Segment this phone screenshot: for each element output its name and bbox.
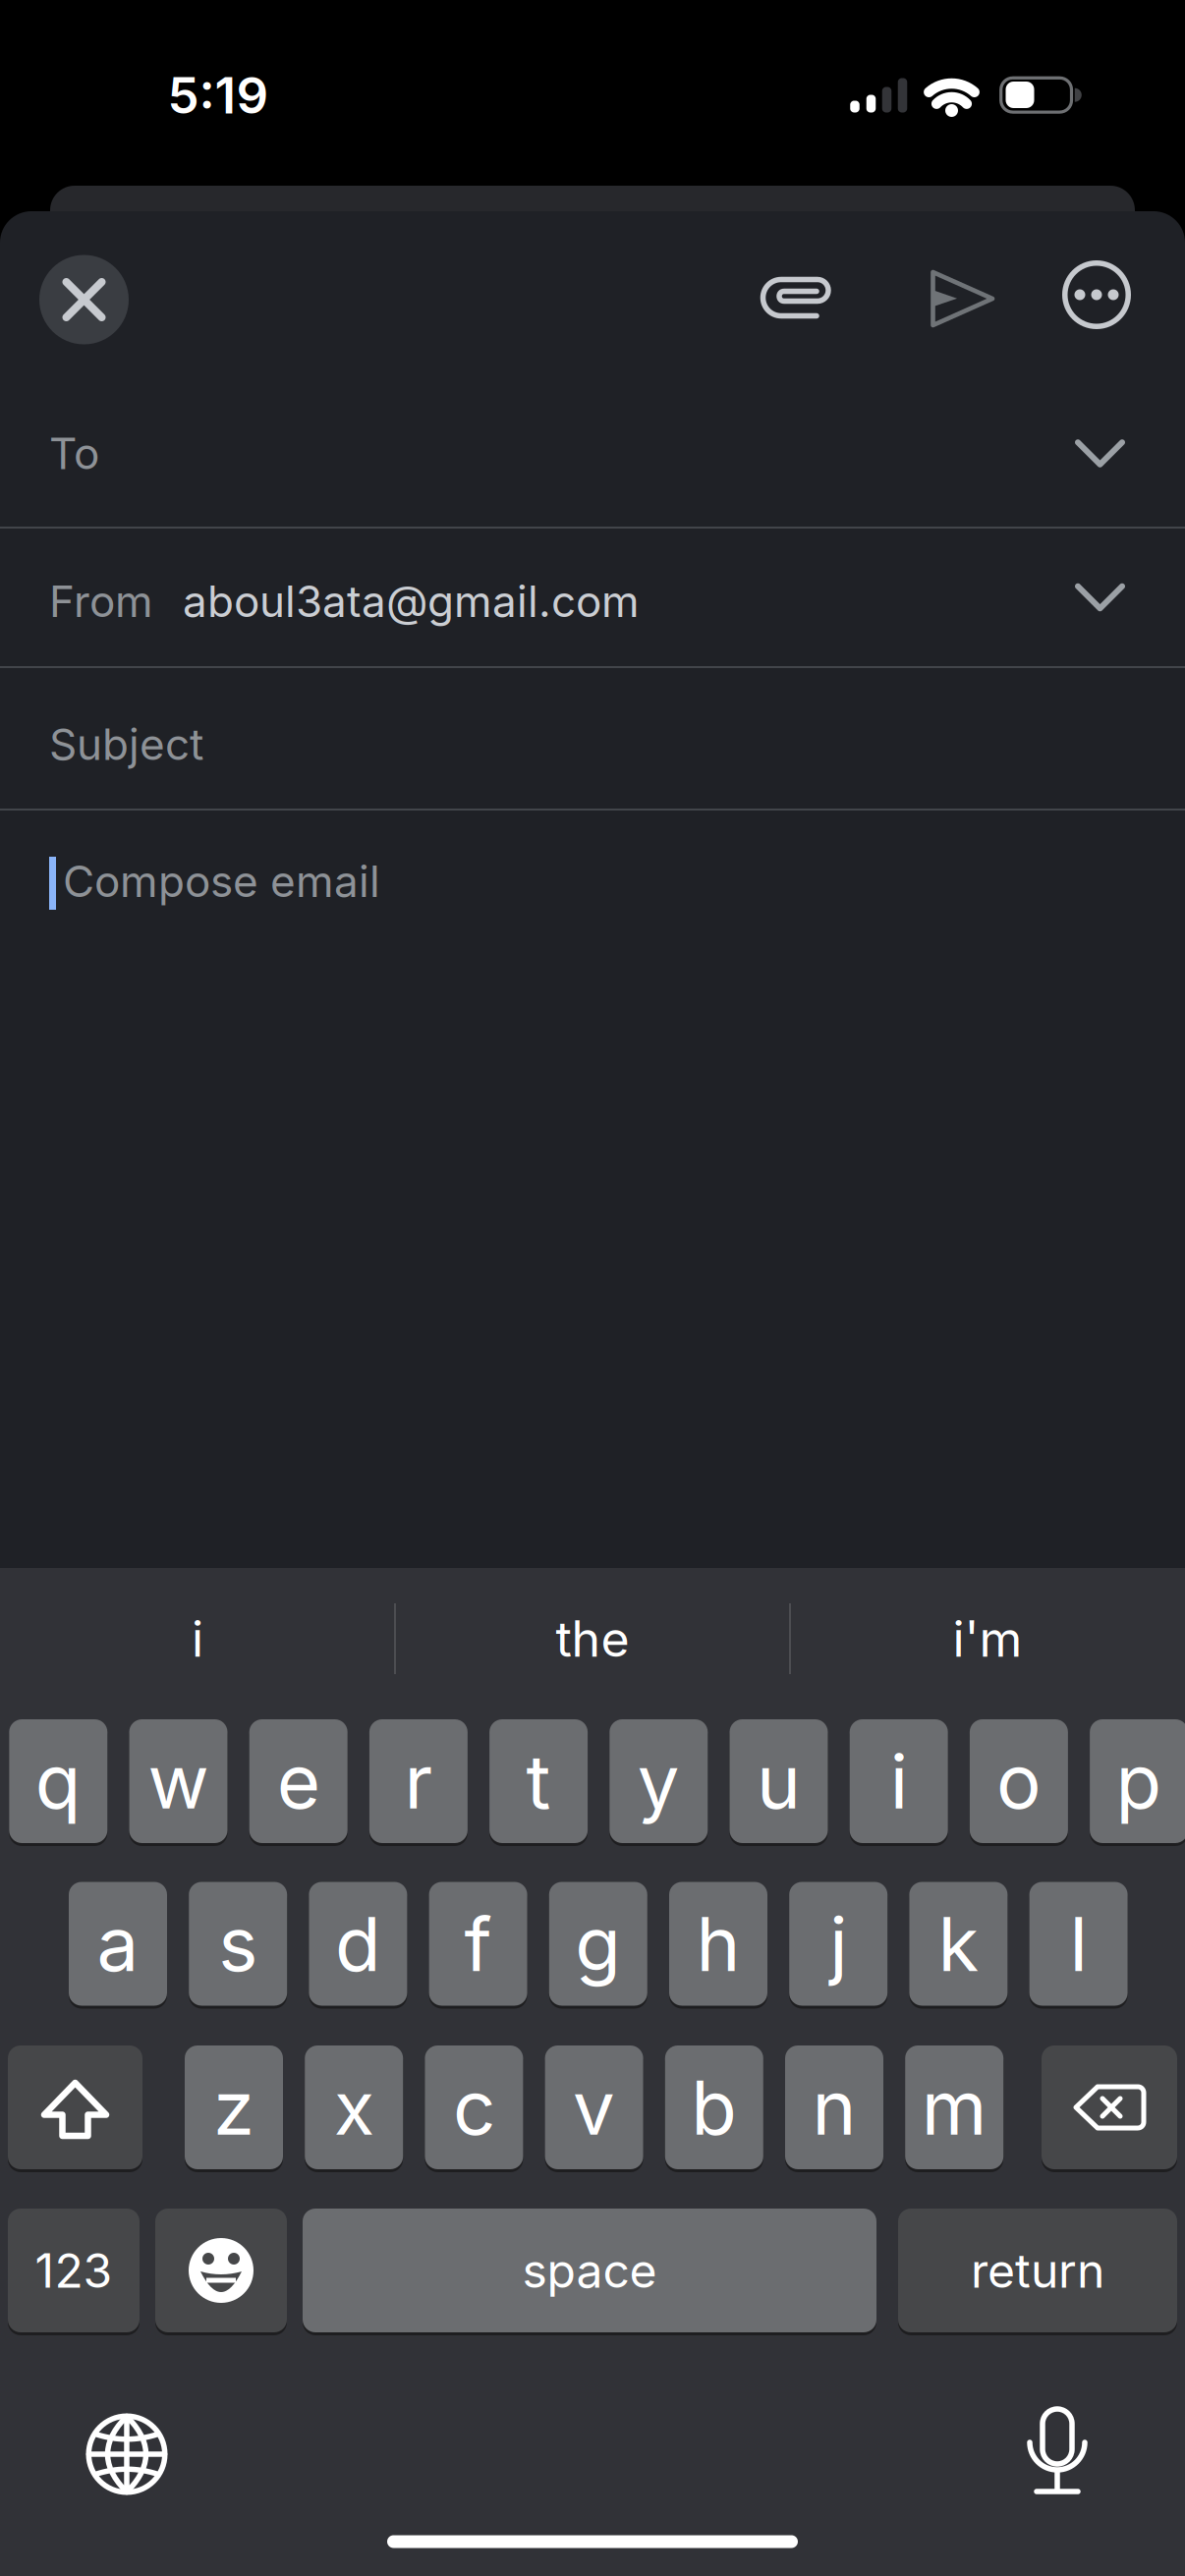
button[interactable]: u (730, 1719, 828, 1843)
button[interactable]: h (669, 1882, 767, 2006)
staticText: i (192, 1609, 203, 1669)
button[interactable]: l (1029, 1882, 1128, 2006)
button[interactable]: n (785, 2045, 883, 2169)
button[interactable]: the (401, 1585, 784, 1693)
staticText: x (334, 2062, 374, 2153)
button[interactable]: 123 (8, 2209, 140, 2332)
staticText: space (522, 2242, 657, 2299)
staticText: w (148, 1736, 209, 1826)
button[interactable]: i (850, 1719, 948, 1843)
staticText: e (277, 1736, 320, 1826)
staticText: j (830, 1899, 847, 1989)
button[interactable]: i (6, 1585, 389, 1693)
staticText: v (573, 2062, 615, 2153)
button[interactable]: f (429, 1882, 527, 2006)
staticText: c (453, 2062, 495, 2153)
button[interactable]: From aboul3ata@gmail.com (0, 529, 1185, 666)
staticText: z (213, 2062, 254, 2153)
staticText: 5:19 (168, 65, 269, 126)
button[interactable]: d (309, 1882, 407, 2006)
button[interactable]: w (129, 1719, 227, 1843)
button[interactable]: i'm (796, 1585, 1179, 1693)
button[interactable]: return (898, 2209, 1177, 2332)
staticText: o (996, 1736, 1041, 1826)
button[interactable]: Subject (0, 668, 1185, 808)
staticText: q (35, 1736, 81, 1826)
button[interactable]: y (609, 1719, 708, 1843)
button[interactable]: Shift (8, 2045, 142, 2169)
button[interactable]: Send (914, 250, 1012, 348)
staticText: To (49, 427, 99, 480)
staticText: t (526, 1736, 551, 1826)
button[interactable]: e (249, 1719, 348, 1843)
button[interactable]: v (545, 2045, 643, 2169)
button[interactable]: Attach file (746, 249, 845, 347)
staticText: p (1116, 1736, 1162, 1826)
staticText: d (335, 1899, 381, 1989)
staticText: the (556, 1609, 629, 1669)
button[interactable]: o (970, 1719, 1068, 1843)
staticText: l (1070, 1899, 1087, 1989)
button[interactable]: Delete (1042, 2045, 1177, 2169)
button[interactable]: t (489, 1719, 588, 1843)
button[interactable]: p (1090, 1719, 1185, 1843)
staticText: g (575, 1899, 621, 1989)
button[interactable]: a (69, 1882, 167, 2006)
staticText: i'm (953, 1609, 1022, 1669)
staticText: k (938, 1899, 979, 1989)
staticText: a (97, 1899, 139, 1989)
button[interactable]: q (9, 1719, 107, 1843)
staticText: r (404, 1736, 433, 1826)
staticText: b (691, 2062, 737, 2153)
staticText: s (218, 1899, 258, 1989)
button[interactable]: Close (39, 255, 129, 344)
staticText: n (812, 2062, 856, 2153)
button[interactable]: s (189, 1882, 287, 2006)
button[interactable]: g (549, 1882, 647, 2006)
button[interactable]: Dictate (1002, 2396, 1110, 2504)
staticText: u (757, 1736, 801, 1826)
staticText: From (49, 575, 153, 627)
button[interactable]: k (909, 1882, 1008, 2006)
staticText: 123 (35, 2242, 113, 2299)
button[interactable]: x (305, 2045, 403, 2169)
button[interactable]: m (905, 2045, 1003, 2169)
staticText: h (696, 1899, 740, 1989)
button[interactable]: z (185, 2045, 283, 2169)
button[interactable]: space (303, 2209, 876, 2332)
staticText: y (638, 1736, 680, 1826)
button[interactable]: c (425, 2045, 523, 2169)
button[interactable]: r (369, 1719, 468, 1843)
staticText: i (890, 1736, 908, 1826)
button[interactable]: More options (1057, 255, 1136, 334)
staticText: return (971, 2242, 1104, 2299)
button[interactable]: Emoji (155, 2209, 287, 2332)
staticText: Subject (49, 718, 203, 770)
staticText: Compose email (63, 855, 380, 907)
staticText: f (464, 1899, 492, 1989)
button[interactable]: Compose email (0, 810, 1185, 1566)
button[interactable]: To (0, 375, 1185, 527)
button[interactable]: Next keyboard (73, 2400, 181, 2508)
staticText: aboul3ata@gmail.com (183, 575, 640, 627)
staticText: m (921, 2062, 987, 2153)
button[interactable]: j (789, 1882, 887, 2006)
button[interactable]: b (665, 2045, 763, 2169)
